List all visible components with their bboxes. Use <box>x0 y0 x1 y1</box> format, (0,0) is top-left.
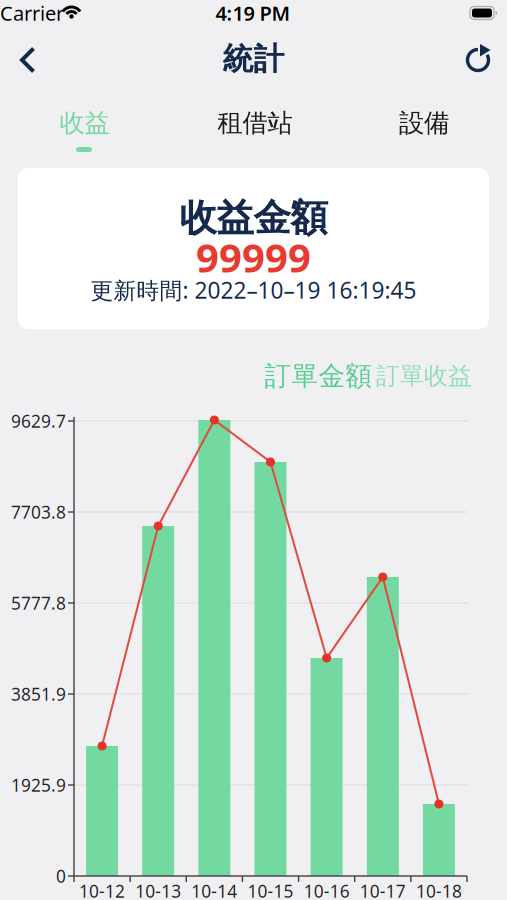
staticText: 7703.8 <box>11 500 66 523</box>
staticText: 10-14 <box>191 879 237 900</box>
staticText: 10-13 <box>135 879 181 900</box>
staticText: 10-17 <box>360 879 406 900</box>
staticText: Carrier <box>0 0 64 26</box>
staticText: 訂單金額 <box>264 360 372 392</box>
button[interactable]: 訂單金額 <box>0 0 507 900</box>
staticText: 收益金額 <box>179 195 327 241</box>
button[interactable]: Back <box>0 0 44 44</box>
staticText: 更新時間: 2022–10–19 16:19:45 <box>90 275 416 305</box>
staticText: 3851.9 <box>11 682 66 705</box>
staticText: 10-16 <box>304 879 350 900</box>
button[interactable]: Refresh <box>0 0 44 44</box>
staticText: 租借站 <box>217 107 292 138</box>
staticText: 5777.8 <box>11 591 66 614</box>
staticText: 9629.7 <box>11 409 66 432</box>
button[interactable]: 訂單收益 <box>0 0 507 900</box>
staticText: 收益 <box>59 107 109 138</box>
button[interactable]: 收益 <box>0 0 507 900</box>
staticText: 統計 <box>222 40 284 78</box>
staticText: 4:19 PM <box>215 0 290 26</box>
staticText: 10-15 <box>247 879 293 900</box>
staticText: 1925.9 <box>11 773 66 796</box>
button[interactable]: 租借站 <box>0 0 507 900</box>
staticText: 10-18 <box>416 879 462 900</box>
staticText: 訂單收益 <box>376 361 472 391</box>
staticText: 10-12 <box>79 879 125 900</box>
staticText: 99999 <box>196 230 311 283</box>
staticText: 設備 <box>399 107 449 138</box>
staticText: 0 <box>56 864 66 887</box>
button[interactable]: 設備 <box>0 0 507 900</box>
